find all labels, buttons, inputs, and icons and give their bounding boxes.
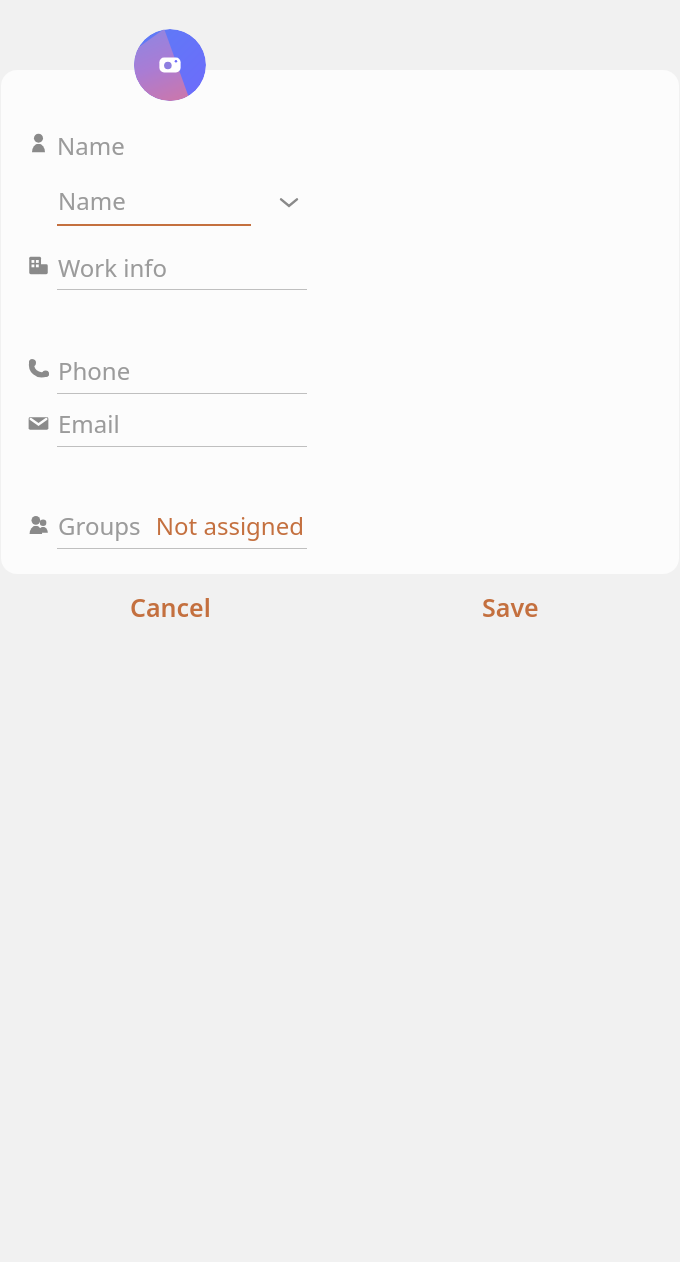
staticText: Save: [482, 590, 539, 624]
staticText: Phone: [58, 354, 131, 387]
button[interactable]: Name: [1, 177, 679, 226]
button[interactable]: Email: [1, 404, 679, 453]
button[interactable]: Change photo: [134, 29, 206, 101]
button[interactable]: Groups: [1, 506, 679, 555]
button[interactable]: Expand name fields: [278, 191, 300, 213]
staticText: Work info: [58, 251, 168, 284]
button[interactable]: Cancel: [0, 583, 340, 631]
button[interactable]: Save: [340, 583, 680, 631]
staticText: Name: [57, 129, 125, 162]
button[interactable]: Name: [1, 125, 679, 165]
button[interactable]: Work info: [1, 247, 679, 296]
staticText: Name: [58, 184, 126, 217]
staticText: Email: [58, 407, 120, 440]
staticText: Groups: [58, 509, 141, 542]
staticText: Not assigned: [1, 509, 304, 542]
staticText: Cancel: [130, 590, 211, 624]
button[interactable]: Phone: [1, 351, 679, 400]
